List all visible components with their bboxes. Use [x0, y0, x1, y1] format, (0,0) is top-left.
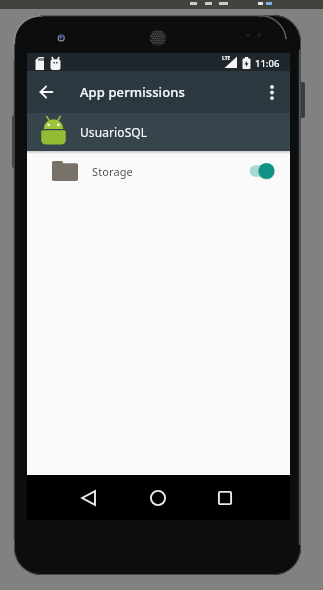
- staticText: Storage: [92, 164, 133, 179]
- button[interactable]: [64, 475, 112, 520]
- staticText: App permissions: [80, 83, 185, 101]
- button[interactable]: [248, 156, 282, 186]
- button[interactable]: [255, 74, 289, 110]
- button[interactable]: Storage: [27, 151, 290, 191]
- staticText: 11:06: [255, 57, 280, 70]
- button[interactable]: [134, 475, 182, 520]
- button[interactable]: [201, 475, 249, 520]
- button[interactable]: [29, 74, 63, 110]
- staticText: LTE: [222, 55, 231, 62]
- staticText: UsuarioSQL: [80, 124, 148, 140]
